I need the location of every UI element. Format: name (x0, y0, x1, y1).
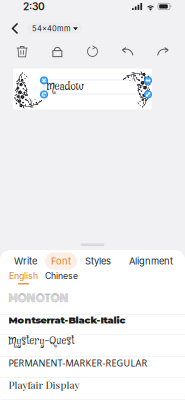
button[interactable]: Mystery-Quest (0, 331, 185, 352)
staticText: Font (51, 255, 71, 267)
button[interactable]: Alignment (124, 252, 178, 270)
staticText: Write (14, 255, 37, 267)
button[interactable]: Undo (115, 41, 141, 61)
staticText: Alignment (129, 255, 173, 267)
button[interactable]: Playfair Display (0, 374, 185, 395)
staticText: 54x40mm (32, 24, 71, 33)
staticText: 2:30 (23, 0, 45, 13)
staticText: Montserrat-Black-Italic (8, 314, 125, 326)
button[interactable]: Styles (80, 252, 116, 270)
staticText: English (9, 271, 38, 281)
staticText: Mystery-Quest (8, 335, 74, 348)
button[interactable]: Reset (79, 41, 105, 61)
staticText: MONOTON (8, 291, 68, 306)
button[interactable]: Delete (9, 41, 35, 61)
button[interactable]: Chinese (42, 270, 80, 285)
staticText: Meadow (46, 80, 83, 94)
button[interactable]: Lock (44, 41, 70, 61)
button[interactable]: Font (45, 252, 77, 270)
staticText: PERMANENT-MARKER-REGULAR (8, 357, 147, 369)
button[interactable]: 54x40mm (27, 23, 82, 33)
button[interactable]: Back (4, 16, 26, 40)
staticText: Styles (85, 255, 111, 267)
button[interactable]: PERMANENT-MARKER-REGULAR (0, 352, 185, 374)
button[interactable]: Write (9, 252, 42, 270)
button[interactable]: Redo (150, 41, 176, 61)
staticText: Playfair Display (8, 378, 79, 391)
staticText: Chinese (45, 271, 78, 281)
button[interactable]: Montserrat-Black-Italic (0, 309, 185, 331)
button[interactable]: English (4, 270, 42, 285)
button[interactable]: MONOTON (0, 288, 185, 309)
